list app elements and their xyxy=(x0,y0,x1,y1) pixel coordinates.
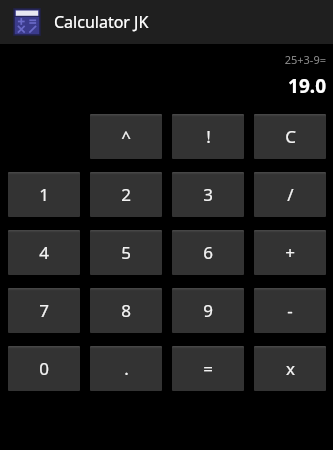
staticText: . xyxy=(124,357,129,380)
button[interactable]: ^ xyxy=(90,114,162,159)
staticText: 25+3-9= xyxy=(0,52,326,67)
staticText: / xyxy=(287,183,294,206)
staticText: 2 xyxy=(121,183,131,206)
staticText: = xyxy=(203,357,213,380)
button[interactable]: C xyxy=(254,114,326,159)
staticText: 8 xyxy=(121,299,131,322)
staticText: ^ xyxy=(121,125,131,148)
staticText: Calculator JK xyxy=(54,11,149,33)
button[interactable]: x xyxy=(254,346,326,391)
button[interactable]: . xyxy=(90,346,162,391)
button[interactable]: ! xyxy=(172,114,244,159)
button[interactable]: 1 xyxy=(8,172,80,217)
staticText: 0 xyxy=(39,357,49,380)
button[interactable]: 2 xyxy=(90,172,162,217)
staticText: 6 xyxy=(203,241,213,264)
staticText: 9 xyxy=(203,299,213,322)
button[interactable]: + xyxy=(254,230,326,275)
button[interactable]: 0 xyxy=(8,346,80,391)
staticText: 5 xyxy=(121,241,131,264)
staticText: 3 xyxy=(203,183,213,206)
button[interactable]: 6 xyxy=(172,230,244,275)
staticText: + xyxy=(285,241,295,264)
button[interactable]: 7 xyxy=(8,288,80,333)
button[interactable]: / xyxy=(254,172,326,217)
staticText: - xyxy=(287,299,293,322)
staticText: ! xyxy=(206,125,211,148)
button[interactable]: 3 xyxy=(172,172,244,217)
button[interactable]: = xyxy=(172,346,244,391)
staticText: x xyxy=(286,357,295,380)
staticText: 7 xyxy=(39,299,49,322)
staticText: 1 xyxy=(39,183,49,206)
button[interactable]: 9 xyxy=(172,288,244,333)
button[interactable]: 5 xyxy=(90,230,162,275)
staticText: 4 xyxy=(39,241,49,264)
button[interactable]: 4 xyxy=(8,230,80,275)
button[interactable]: - xyxy=(254,288,326,333)
staticText: C xyxy=(285,125,296,148)
button[interactable]: 8 xyxy=(90,288,162,333)
staticText: 19.0 xyxy=(0,73,326,99)
